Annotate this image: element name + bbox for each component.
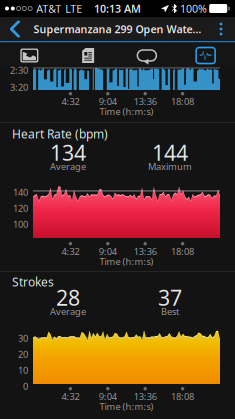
staticText: 100% [180, 1, 207, 16]
staticText: Time (h:m:s) [99, 400, 153, 413]
staticText: 10:13 AM [94, 1, 141, 16]
staticText: Best [161, 305, 179, 318]
staticText: AT&T [36, 1, 61, 16]
button[interactable]: More options [208, 17, 234, 41]
button[interactable]: Laps [117, 42, 176, 68]
staticText: 4:32 [61, 390, 79, 403]
staticText: 4:32 [61, 95, 79, 108]
staticText: 134 [50, 138, 86, 167]
staticText: Time (h:m:s) [99, 105, 153, 118]
staticText: 13:36 [134, 245, 157, 258]
staticText: Average [50, 160, 86, 173]
staticText: Maximum [148, 160, 192, 173]
button[interactable]: Summary [59, 42, 118, 68]
button[interactable]: Back [1, 17, 29, 41]
staticText: 9:04 [99, 95, 117, 108]
staticText: 37 [158, 283, 182, 312]
staticText: 9:04 [99, 245, 117, 258]
staticText: Supermanzana 299 Open Wate… [33, 22, 201, 36]
staticText: 2:30 [10, 64, 28, 76]
staticText: 20 [18, 348, 28, 360]
staticText: Time (h:m:s) [99, 255, 153, 268]
staticText: 30 [18, 332, 28, 344]
staticText: 144 [152, 138, 188, 167]
staticText: 0 [23, 380, 28, 392]
staticText: 9:04 [99, 390, 117, 403]
staticText: 100 [13, 218, 28, 230]
staticText: 28 [56, 283, 80, 312]
button[interactable]: Map [0, 42, 59, 68]
staticText: 140 [13, 186, 28, 198]
staticText: LTE [65, 1, 82, 16]
staticText: 18:08 [171, 390, 194, 403]
staticText: 13:36 [134, 95, 157, 108]
staticText: Average [50, 305, 86, 318]
button[interactable]: Charts [176, 42, 235, 68]
staticText: 18:08 [171, 95, 194, 108]
staticText: Strokes [12, 274, 54, 290]
staticText: 18:08 [171, 245, 194, 258]
staticText: 4:32 [61, 245, 79, 258]
staticText: 13:36 [134, 390, 157, 403]
staticText: 120 [13, 202, 28, 214]
staticText: 3:20 [10, 81, 28, 93]
staticText: Heart Rate (bpm) [12, 126, 108, 142]
staticText: 10 [18, 364, 28, 376]
